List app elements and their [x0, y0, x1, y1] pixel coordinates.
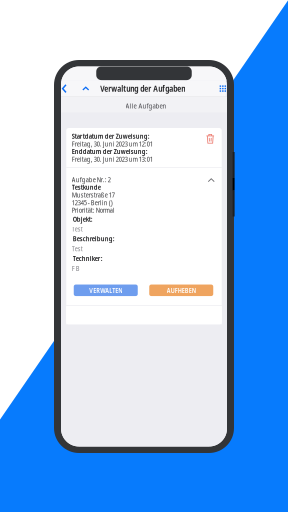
button[interactable]: Delete task [204, 132, 216, 145]
button[interactable]: Back [59, 81, 70, 96]
staticText: Testkunde [72, 182, 101, 192]
staticText: VERWALTEN [89, 286, 122, 295]
staticText: Test [72, 244, 83, 253]
staticText: Objekt: [73, 214, 93, 224]
button[interactable]: AUFHEBEN [149, 284, 213, 296]
staticText: Aufgabe Nr.: 2 [72, 175, 111, 184]
staticText: Freitag, 30. Juni 2023 um 12:01 [72, 139, 153, 148]
button[interactable]: Grid view [217, 81, 228, 96]
staticText: AUFHEBEN [167, 286, 196, 295]
staticText: Beschreibung: [73, 234, 115, 243]
staticText: Enddatum der Zuweisung: [72, 147, 148, 156]
staticText: 12345 - Berlin () [72, 198, 113, 207]
button[interactable]: VERWALTEN [74, 284, 138, 296]
staticText: Musterstraße 17 [72, 190, 115, 199]
button[interactable]: Collapse all [70, 81, 89, 96]
staticText: Verwaltung der Aufgaben [100, 83, 185, 94]
staticText: Techniker: [73, 254, 103, 263]
staticText: Alle Aufgaben [125, 101, 166, 111]
staticText: Priorität: Normal [72, 205, 115, 215]
staticText: Test [72, 224, 83, 233]
staticText: F B [72, 263, 80, 273]
staticText: Freitag, 30. Juni 2023 um 13:01 [72, 154, 153, 164]
button[interactable]: Collapse details [206, 176, 216, 185]
staticText: Startdatum der Zuweisung: [72, 131, 150, 141]
